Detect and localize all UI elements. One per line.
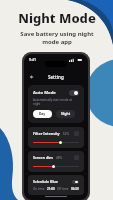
button[interactable]: Schedule Blue xyxy=(28,175,84,195)
staticText: On time xyxy=(33,187,45,191)
staticText: Night Mode xyxy=(18,9,96,27)
staticText: Filter Intensity xyxy=(33,131,60,136)
button[interactable]: Screen dim xyxy=(28,151,84,172)
button[interactable]: Schedule toggle xyxy=(72,180,79,184)
staticText: Day xyxy=(39,112,46,116)
staticText: 9:41 xyxy=(29,57,36,62)
staticText: Setting xyxy=(48,74,64,80)
staticText: Save battery using night mode app xyxy=(17,30,97,46)
staticText: 21:00 xyxy=(47,187,55,191)
staticText: Auto Mode xyxy=(33,90,56,96)
staticText: Screen dim xyxy=(33,155,53,160)
button[interactable]: Auto Mode xyxy=(28,85,84,123)
button[interactable]: More options xyxy=(74,155,79,160)
staticText: Off time xyxy=(57,187,69,191)
button[interactable]: Filter Intensity xyxy=(28,127,84,148)
staticText: Automatically start mode at night xyxy=(33,98,79,106)
staticText: 48% xyxy=(56,156,62,160)
button[interactable]: More options xyxy=(74,131,79,136)
staticText: Night xyxy=(61,112,71,116)
button[interactable]: Day xyxy=(33,110,52,118)
button[interactable]: Night xyxy=(56,110,75,118)
staticText: 06:30 xyxy=(71,187,79,191)
staticText: Schedule Blue xyxy=(33,179,59,184)
button[interactable]: Back xyxy=(28,73,36,81)
staticText: 62% xyxy=(63,132,69,136)
button[interactable]: Auto mode toggle xyxy=(69,90,79,96)
